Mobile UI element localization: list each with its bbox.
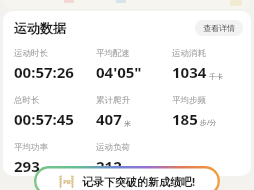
staticText: 293 bbox=[14, 156, 40, 176]
staticText: 212 bbox=[96, 156, 122, 176]
button[interactable]: 查看详情 bbox=[195, 20, 243, 36]
staticText: 1034 bbox=[172, 62, 207, 82]
staticText: 步/分 bbox=[200, 118, 217, 128]
staticText: PB bbox=[63, 178, 71, 186]
staticText: 累计爬升 bbox=[96, 95, 130, 106]
staticText: 运动消耗 bbox=[172, 48, 206, 59]
staticText: 米 bbox=[124, 119, 131, 128]
staticText: 总时长 bbox=[14, 95, 40, 106]
staticText: 平均配速 bbox=[96, 48, 130, 59]
staticText: 记录下突破的新成绩吧! bbox=[82, 174, 196, 189]
staticText: 185 bbox=[172, 109, 198, 129]
staticText: 运动时长 bbox=[14, 48, 48, 59]
staticText: 407 bbox=[96, 109, 122, 129]
staticText: 04'05" bbox=[96, 62, 142, 82]
staticText: 运动负荷 bbox=[96, 142, 130, 153]
button[interactable]: PB 奖章 bbox=[34, 166, 220, 190]
staticText: 平均功率 bbox=[14, 142, 48, 153]
staticText: 平均步频 bbox=[172, 95, 206, 106]
staticText: 千卡 bbox=[209, 72, 223, 81]
staticText: 00:57:45 bbox=[14, 109, 74, 129]
staticText: 瓦 bbox=[42, 166, 49, 175]
staticText: 运动数据 bbox=[14, 20, 66, 36]
staticText: 00:57:26 bbox=[14, 62, 74, 82]
other: PB 奖章 bbox=[58, 173, 75, 190]
staticText: 查看详情 bbox=[203, 23, 235, 33]
